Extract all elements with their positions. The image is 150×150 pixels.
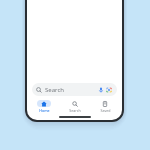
button[interactable]: Google Lens — [105, 86, 113, 94]
button[interactable]: Saved — [91, 99, 119, 114]
staticText: Search — [69, 108, 81, 113]
button[interactable]: Search — [32, 83, 117, 96]
staticText: Home — [39, 108, 50, 113]
button[interactable]: Home — [30, 99, 58, 114]
button[interactable]: Voice search — [97, 86, 105, 94]
staticText: Saved — [100, 108, 111, 113]
button[interactable]: Search — [61, 99, 89, 114]
staticText: Search — [45, 86, 64, 94]
